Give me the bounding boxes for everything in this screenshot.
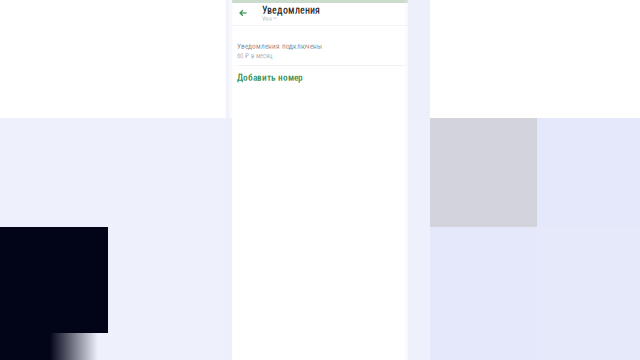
staticText: Уведомления подключены xyxy=(237,42,322,51)
button[interactable]: Добавить номер xyxy=(232,0,408,89)
staticText: Уведомления xyxy=(262,4,320,16)
staticText: Visa •• xyxy=(262,15,277,22)
staticText: Добавить номер xyxy=(237,72,303,83)
staticText: 60 ₽ в месяц xyxy=(237,52,272,60)
button[interactable]: Назад xyxy=(232,0,253,23)
